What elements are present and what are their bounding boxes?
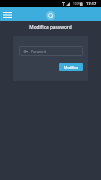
staticText: 100% — [73, 2, 82, 6]
staticText: Password — [31, 49, 46, 53]
staticText: 17:17 — [86, 1, 97, 6]
button[interactable]: Modifica — [59, 63, 83, 71]
staticText: Modifica — [64, 65, 79, 70]
staticText: Modifica password — [0, 24, 101, 31]
button[interactable]: Open navigation menu — [1, 9, 13, 20]
button[interactable]: Password — [19, 46, 83, 56]
